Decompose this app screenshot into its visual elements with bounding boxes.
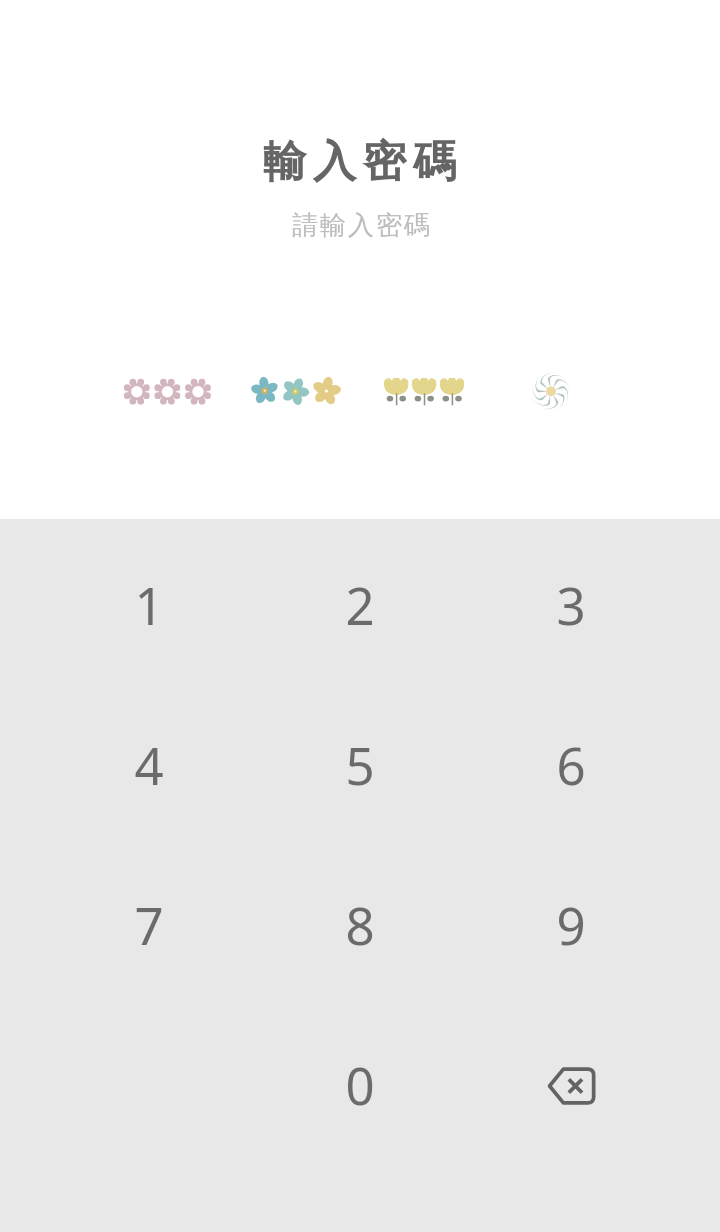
button[interactable]: 0 (254, 1004, 465, 1164)
button[interactable]: 8 (254, 844, 465, 1004)
staticText: 2 (345, 570, 375, 639)
staticText: 1 (134, 570, 164, 639)
staticText: 輸入密碼 (263, 135, 463, 189)
button[interactable]: 2 (254, 524, 465, 684)
button[interactable]: 3 (465, 524, 676, 684)
staticText: 4 (134, 730, 164, 799)
button[interactable]: 7 (43, 844, 254, 1004)
staticText: 5 (345, 730, 375, 799)
staticText: 0 (345, 1050, 375, 1119)
button[interactable]: 4 (43, 684, 254, 844)
staticText: 3 (556, 570, 586, 639)
staticText: 9 (556, 890, 586, 959)
staticText: 6 (556, 730, 586, 799)
staticText: 8 (345, 890, 375, 959)
button[interactable]: 5 (254, 684, 465, 844)
button[interactable]: 9 (465, 844, 676, 1004)
button[interactable]: 6 (465, 684, 676, 844)
staticText: 7 (134, 890, 164, 959)
button[interactable]: Backspace (465, 1004, 676, 1164)
button[interactable]: 1 (43, 524, 254, 684)
staticText: 請輸入密碼 (291, 209, 431, 242)
